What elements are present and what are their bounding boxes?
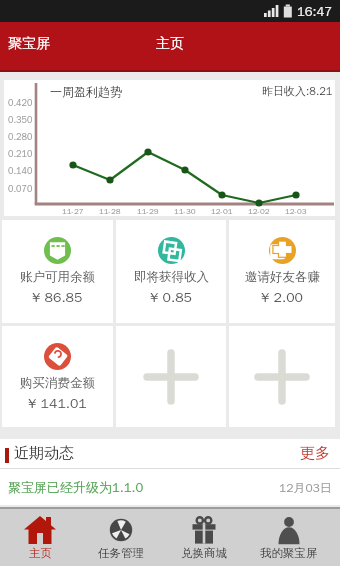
staticText: 0.140 xyxy=(8,165,32,176)
staticText: 0.070 xyxy=(8,183,32,194)
button[interactable]: 购买消费金额 xyxy=(2,326,113,427)
staticText: 账户可用余额 xyxy=(20,269,95,285)
button[interactable] xyxy=(229,326,335,427)
staticText: 12-03 xyxy=(285,206,307,216)
staticText: 近期动态 xyxy=(14,444,74,463)
staticText: 购买消费金额 xyxy=(20,375,95,391)
staticText: 更多 xyxy=(300,444,330,463)
button[interactable]: 任务管理 xyxy=(80,507,162,566)
staticText: 16:47 xyxy=(297,3,333,19)
staticText: 0.350 xyxy=(8,114,32,125)
button[interactable]: 我的聚宝屏 xyxy=(246,507,332,566)
staticText: 0.420 xyxy=(8,97,32,108)
staticText: 0.280 xyxy=(8,131,32,142)
staticText: ¥ 2.00 xyxy=(261,289,303,307)
staticText: 昨日收入:8.21 xyxy=(262,84,333,98)
button[interactable]: 即将获得收入 xyxy=(116,220,226,323)
staticText: 聚宝屏 xyxy=(8,35,50,53)
button[interactable]: 主页 xyxy=(0,507,80,566)
staticText: 聚宝屏已经升级为1.1.0 xyxy=(8,479,144,495)
staticText: 11-30 xyxy=(174,206,196,216)
staticText: 11-29 xyxy=(137,206,159,216)
staticText: 11-28 xyxy=(99,206,121,216)
staticText: 即将获得收入 xyxy=(134,269,209,285)
button[interactable]: 聚宝屏已经升级为1.1.0 xyxy=(0,469,340,505)
button[interactable]: 账户可用余额 xyxy=(2,220,113,323)
staticText: ¥ 0.85 xyxy=(150,289,192,307)
staticText: ¥ 86.85 xyxy=(32,289,83,307)
staticText: 主页 xyxy=(29,546,52,560)
button[interactable]: 近期动态 xyxy=(0,439,340,468)
button[interactable]: 邀请好友各赚 xyxy=(229,220,335,323)
staticText: ¥ 141.01 xyxy=(28,395,87,413)
staticText: 11-27 xyxy=(62,206,84,216)
staticText: 12-01 xyxy=(211,206,233,216)
staticText: 我的聚宝屏 xyxy=(260,546,318,560)
staticText: 12-02 xyxy=(248,206,270,216)
button[interactable] xyxy=(116,326,226,427)
staticText: 任务管理 xyxy=(98,546,144,560)
staticText: 12月03日 xyxy=(279,480,332,495)
button[interactable]: 兑换商城 xyxy=(162,507,246,566)
staticText: 邀请好友各赚 xyxy=(245,269,320,285)
staticText: 主页 xyxy=(156,35,184,53)
staticText: 0.210 xyxy=(8,148,32,159)
button[interactable]: 聚宝屏 xyxy=(8,35,50,53)
staticText: 一周盈利趋势 xyxy=(50,84,122,99)
staticText: 兑换商城 xyxy=(181,546,227,560)
